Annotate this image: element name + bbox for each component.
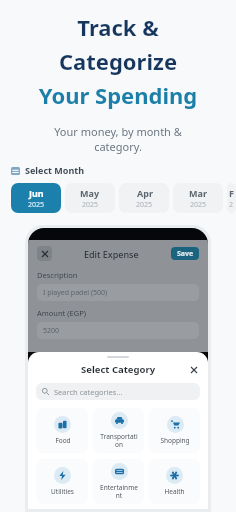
staticText: F bbox=[229, 187, 234, 199]
button[interactable]: May bbox=[65, 183, 115, 213]
staticText: I played padel (500) bbox=[43, 288, 108, 298]
staticText: Description bbox=[37, 270, 78, 280]
staticText: 2025 bbox=[136, 200, 153, 210]
button[interactable]: Shopping bbox=[149, 408, 200, 453]
button[interactable]: Close sheet bbox=[187, 363, 200, 376]
staticText: Transportati on bbox=[100, 432, 138, 449]
staticText: 2025 bbox=[190, 200, 207, 210]
staticText: Your money, by month & bbox=[0, 124, 236, 139]
button[interactable]: Close bbox=[37, 246, 52, 261]
button[interactable]: Food bbox=[36, 408, 88, 453]
staticText: Mar bbox=[189, 187, 207, 199]
staticText: Categorize bbox=[0, 46, 236, 76]
staticText: Track & bbox=[0, 12, 236, 42]
staticText: Jun bbox=[29, 187, 44, 199]
staticText: Utilities bbox=[51, 487, 74, 496]
button[interactable]: Mar bbox=[173, 183, 223, 213]
staticText: 2025 bbox=[82, 200, 99, 210]
staticText: Amount (EGP) bbox=[37, 308, 86, 318]
staticText: Apr bbox=[137, 187, 153, 199]
staticText: Save bbox=[177, 249, 194, 259]
staticText: Food bbox=[55, 436, 71, 445]
button[interactable]: F bbox=[227, 183, 236, 213]
staticText: Your Spending bbox=[0, 80, 236, 110]
staticText: Shopping bbox=[160, 436, 190, 445]
staticText: Edit Expense bbox=[84, 248, 139, 260]
button[interactable]: Utilities bbox=[36, 459, 88, 504]
button[interactable]: Apr bbox=[119, 183, 169, 213]
staticText: Select Category bbox=[81, 363, 156, 376]
button[interactable]: Save bbox=[171, 247, 199, 260]
button[interactable]: Entertainme nt bbox=[93, 459, 144, 504]
staticText: Search categories... bbox=[54, 387, 123, 397]
staticText: 2025 bbox=[28, 200, 45, 210]
staticText: Health bbox=[164, 487, 185, 496]
staticText: May bbox=[80, 187, 100, 199]
button[interactable]: Jun bbox=[11, 183, 61, 213]
staticText: Entertainme nt bbox=[100, 483, 138, 500]
staticText: category. bbox=[0, 139, 236, 154]
button[interactable]: Search categories... bbox=[36, 383, 200, 400]
button[interactable]: Transportati on bbox=[93, 408, 144, 453]
staticText: 2 bbox=[229, 200, 234, 210]
staticText: Select Month bbox=[25, 164, 84, 176]
staticText: 5200 bbox=[43, 326, 60, 336]
button[interactable]: Health bbox=[149, 459, 200, 504]
